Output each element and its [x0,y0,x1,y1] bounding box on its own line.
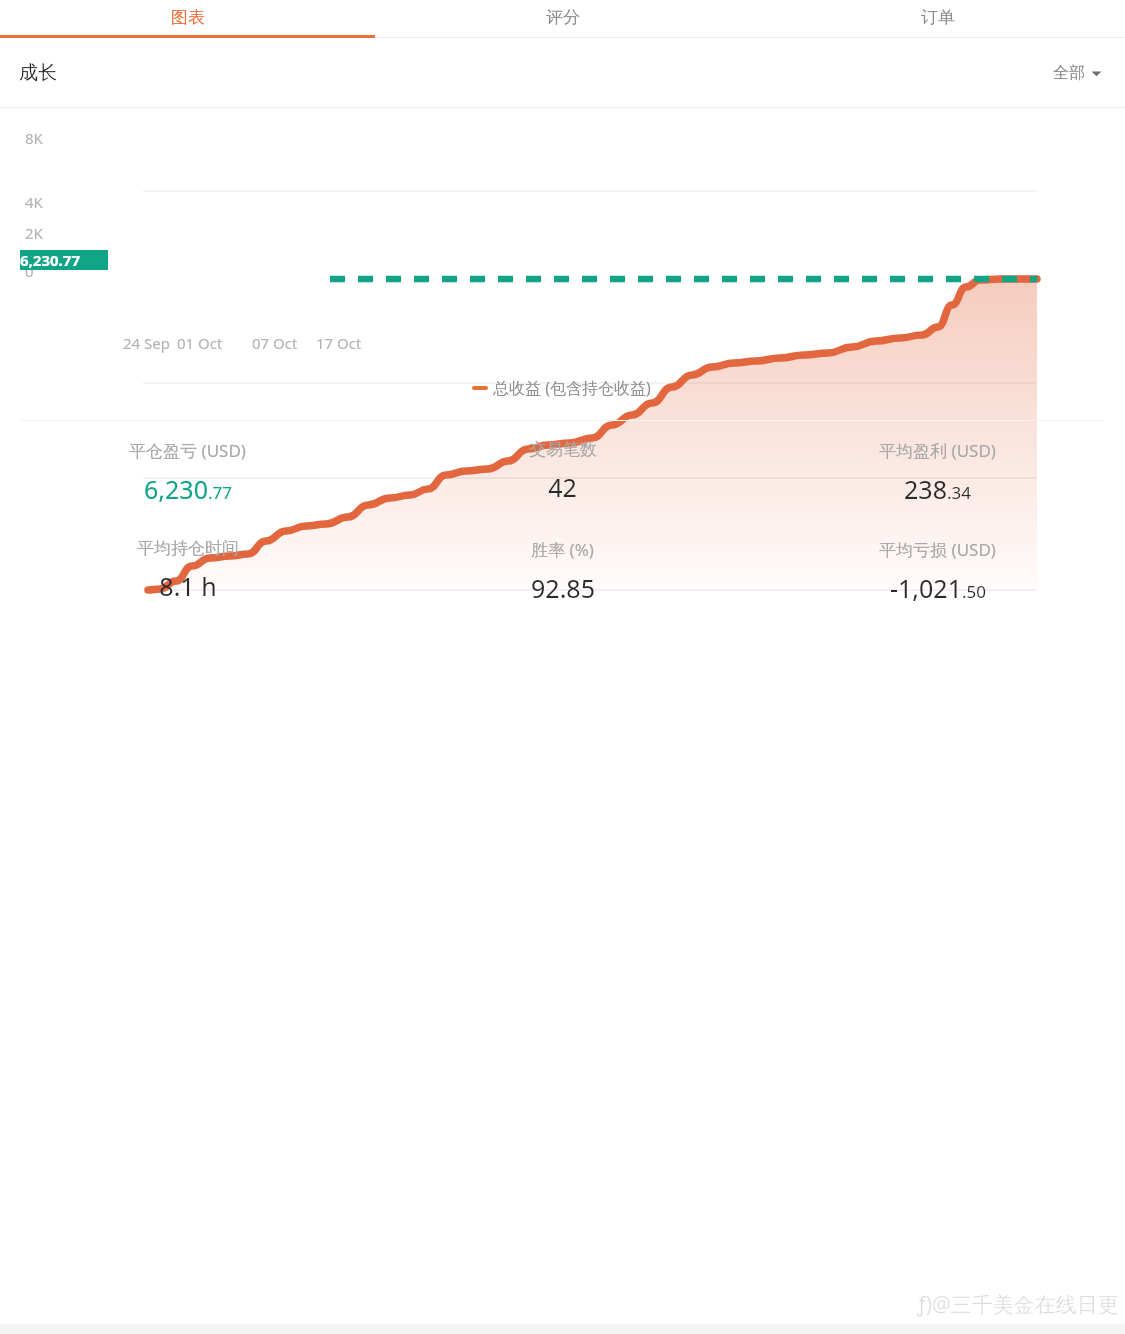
staticText: 4K [25,192,43,212]
staticText: 交易笔数 [529,439,597,460]
staticText: 总收益 (包含持仓收益) [493,377,651,399]
button[interactable]: 平仓盈亏 (USD) [0,433,375,512]
staticText: 胜率 (%) [531,538,594,561]
other: Filter dropdown [1091,68,1102,79]
staticText: 01 Oct [177,333,223,353]
button[interactable]: 全部 [1049,59,1106,87]
staticText: 2K [25,223,43,243]
staticText: 平均亏损 (USD) [879,538,996,561]
staticText: 图表 [171,7,205,28]
button[interactable]: 订单 [750,0,1125,35]
staticText: 24 Sep [123,333,170,353]
staticText: 07 Oct [252,333,298,353]
staticText: ƒ)@三千美金在线日更 [917,1290,1119,1319]
staticText: 8K [25,128,43,148]
staticText: 238.34 [904,472,971,506]
staticText: 6,230.77 [144,472,232,506]
staticText: 17 Oct [316,333,362,353]
button[interactable]: 评分 [375,0,750,35]
staticText: 订单 [921,7,955,28]
staticText: 平均持仓时间 [137,538,239,559]
button[interactable]: 图表 [0,0,375,35]
staticText: 0 [25,261,34,281]
button[interactable]: 平均持仓时间 [0,532,375,609]
button[interactable]: 胜率 (%) [375,532,750,611]
button[interactable]: 交易笔数 [375,433,750,510]
staticText: 平仓盈亏 (USD) [129,439,246,462]
staticText: 全部 [1053,63,1085,83]
button[interactable]: 平均盈利 (USD) [750,433,1125,512]
staticText: 6,230.77 USD [20,250,108,270]
staticText: 42 [548,470,577,504]
button[interactable]: 平均亏损 (USD) [750,532,1125,611]
staticText: 92.85 [531,571,595,605]
staticText: -1,021.50 [890,571,986,605]
staticText: 评分 [546,7,580,28]
staticText: 平均盈利 (USD) [879,439,996,462]
staticText: 8.1 h [159,569,217,603]
staticText: 成长 [19,61,57,85]
button[interactable]: 6,230.77 USD [20,250,108,270]
